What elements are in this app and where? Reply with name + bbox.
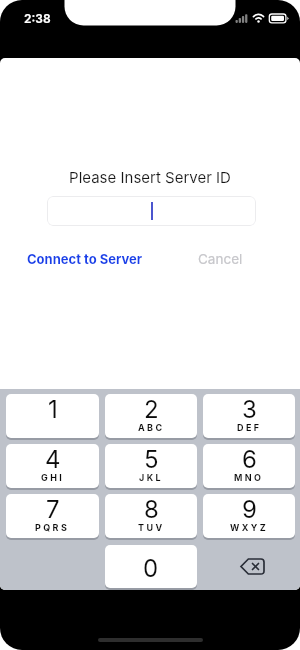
staticText: PQRS xyxy=(35,522,70,533)
staticText: 1 xyxy=(48,395,58,424)
staticText: Cancel xyxy=(198,251,243,267)
button[interactable]: 6 xyxy=(203,444,295,488)
button[interactable]: 9 xyxy=(203,494,295,538)
staticText: JKL xyxy=(139,472,164,483)
button[interactable]: 2 xyxy=(105,394,197,438)
button[interactable]: 8 xyxy=(105,494,197,538)
staticText: Please Insert Server ID xyxy=(0,168,300,186)
staticText: TUV xyxy=(138,522,165,533)
staticText: Connect to Server xyxy=(27,251,143,267)
button[interactable] xyxy=(47,196,256,226)
button[interactable]: 4 xyxy=(6,444,99,488)
staticText: 4 xyxy=(45,445,61,474)
button[interactable]: Cancel xyxy=(198,251,243,267)
button[interactable]: 3 xyxy=(203,394,295,438)
button[interactable]: Connect to Server xyxy=(27,251,143,267)
staticText: 6 xyxy=(242,445,257,474)
staticText: ABC xyxy=(138,422,165,433)
staticText: 2:38 xyxy=(24,11,51,26)
button[interactable]: 0 xyxy=(105,545,197,588)
staticText: 5 xyxy=(144,445,159,474)
staticText: 3 xyxy=(242,395,257,424)
staticText: WXYZ xyxy=(230,522,269,533)
button[interactable]: 5 xyxy=(105,444,197,488)
staticText: 9 xyxy=(242,495,257,524)
staticText: DEF xyxy=(237,422,262,433)
button[interactable]: 7 xyxy=(6,494,99,538)
staticText: GHI xyxy=(41,472,65,483)
button[interactable]: Delete xyxy=(203,545,295,588)
staticText: 0 xyxy=(143,554,159,583)
staticText: 8 xyxy=(144,495,159,524)
staticText: MNO xyxy=(234,472,264,483)
button[interactable]: 1 xyxy=(6,394,99,438)
staticText: 2 xyxy=(144,395,159,424)
staticText: 7 xyxy=(46,495,60,524)
